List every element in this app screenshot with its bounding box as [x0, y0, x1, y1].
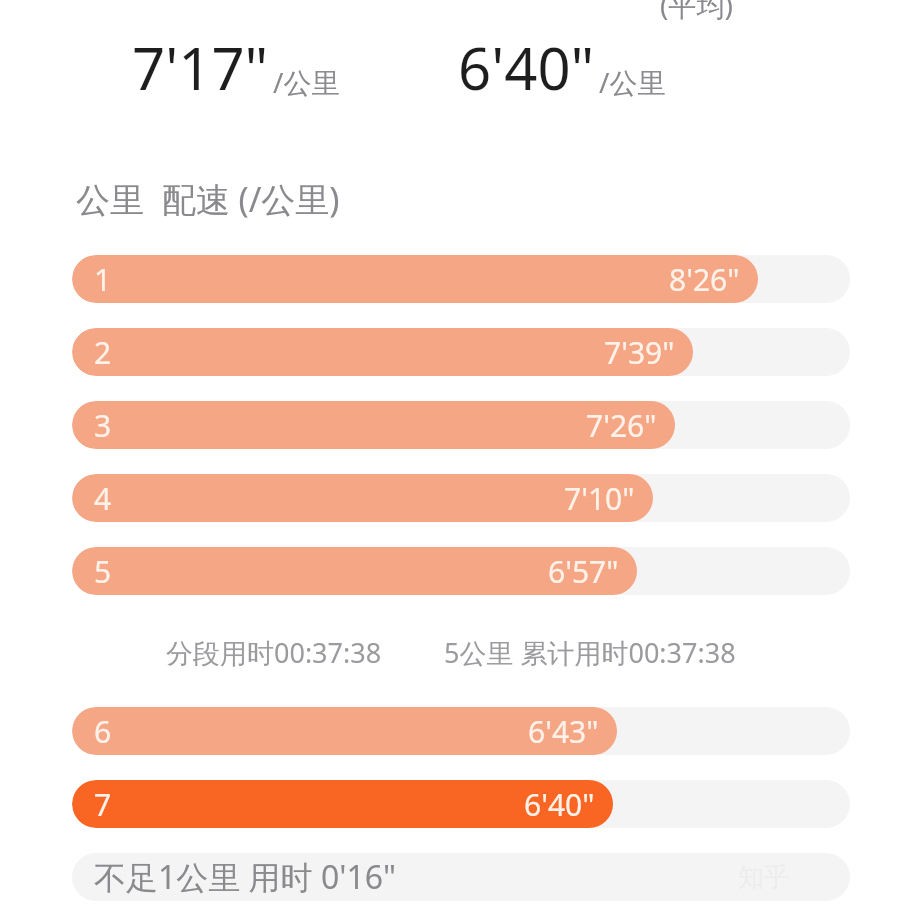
staticText: 2 — [94, 332, 112, 373]
staticText: 公里 配速 (/公里) — [76, 176, 340, 222]
staticText: /公里 — [599, 63, 666, 101]
staticText: 5公里 累计用时00:37:38 — [444, 634, 736, 671]
button[interactable]: 6 — [72, 707, 850, 755]
staticText: 7'17" — [132, 28, 269, 107]
button[interactable]: 1 — [72, 255, 850, 303]
button[interactable]: 3 — [72, 401, 850, 449]
button[interactable]: 5 — [72, 547, 850, 595]
staticText: 6'57" — [548, 551, 619, 592]
staticText: 1 — [94, 259, 112, 300]
staticText: 6 — [94, 711, 112, 752]
staticText: 分段用时00:37:38 — [166, 634, 382, 671]
staticText: 7'26" — [586, 405, 657, 446]
staticText: 8'26" — [669, 259, 740, 300]
staticText: 不足1公里 用时 0'16" — [94, 855, 397, 899]
staticText: 7'39" — [604, 332, 675, 373]
staticText: (平均) — [660, 0, 733, 24]
button[interactable]: 4 — [72, 474, 850, 522]
staticText: 5 — [94, 551, 112, 592]
staticText: /公里 — [273, 63, 340, 101]
staticText: 6'43" — [528, 711, 599, 752]
staticText: 7'10" — [564, 478, 635, 519]
staticText: 3 — [94, 405, 112, 446]
staticText: 7 — [94, 784, 112, 825]
button[interactable]: 不足1公里 用时 0'16" — [72, 853, 850, 901]
staticText: 4 — [94, 478, 112, 519]
staticText: 6'40" — [524, 784, 595, 825]
button[interactable]: 2 — [72, 328, 850, 376]
staticText: 6'40" — [458, 28, 595, 107]
button[interactable]: 7 — [72, 780, 850, 828]
